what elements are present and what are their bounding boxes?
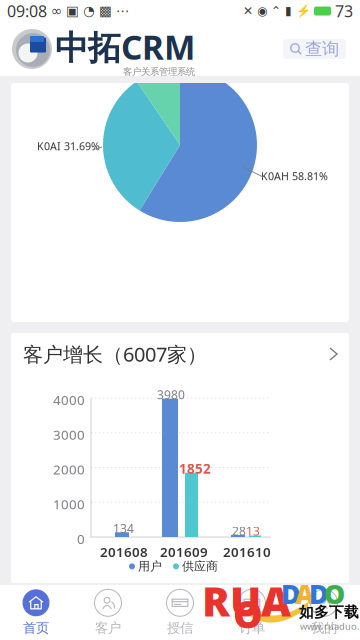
staticText: 13 xyxy=(246,523,260,539)
staticText: ✕ ◉ ⌃ ▮ ⚡ xyxy=(243,4,311,18)
button[interactable]: 首页 xyxy=(0,585,72,640)
staticText: 201608 xyxy=(100,543,148,561)
staticText: 用户 xyxy=(138,559,162,574)
staticText: 201609 xyxy=(160,543,208,561)
staticText: 客户关系管理系统 xyxy=(123,66,195,77)
staticText: 查询 xyxy=(305,38,339,60)
staticText: 3000 xyxy=(53,426,85,443)
staticText: O xyxy=(324,576,345,611)
staticText: 客户增长（6007家） xyxy=(23,341,207,367)
staticText: www.ruaduo.com xyxy=(300,620,360,632)
staticText: 如多下载网 xyxy=(299,603,360,621)
staticText: 1852 xyxy=(179,460,211,477)
staticText: 供应商 xyxy=(182,559,218,574)
staticText: 73 xyxy=(331,0,353,22)
staticText: ∞ ▣ ◔ ▩ ⋯ xyxy=(47,3,129,18)
staticText: 2000 xyxy=(53,460,85,478)
staticText: A xyxy=(295,576,314,611)
staticText: K0AH 58.81% xyxy=(261,169,328,183)
staticText: 0 xyxy=(77,530,85,548)
button[interactable]: 客户增长（6007家） xyxy=(11,333,349,375)
staticText: 首页 xyxy=(23,620,49,636)
staticText: 授信 xyxy=(167,620,193,636)
staticText: 我的 xyxy=(311,620,337,636)
button[interactable]: 我的 xyxy=(288,585,360,640)
staticText: 3980 xyxy=(157,387,185,403)
staticText: 134 xyxy=(113,520,134,536)
staticText: 201610 xyxy=(223,543,271,561)
button[interactable]: 客户 xyxy=(72,585,144,640)
staticText: 4000 xyxy=(53,391,85,409)
staticText: 09:08 xyxy=(7,0,47,22)
button[interactable]: 订单 xyxy=(216,585,288,640)
staticText: 1000 xyxy=(53,495,85,513)
staticText: D xyxy=(281,576,301,611)
button[interactable]: 查询 xyxy=(283,39,346,59)
button[interactable]: 授信 xyxy=(144,585,216,640)
staticText: 客户 xyxy=(95,620,121,636)
staticText: 28 xyxy=(232,523,246,539)
staticText: RUA xyxy=(202,573,291,628)
staticText: 订单 xyxy=(239,620,265,636)
staticText: O xyxy=(233,589,263,639)
staticText: K0AI 31.69% xyxy=(37,139,100,153)
staticText: D xyxy=(309,576,329,611)
staticText: 中拓CRM xyxy=(55,25,195,69)
